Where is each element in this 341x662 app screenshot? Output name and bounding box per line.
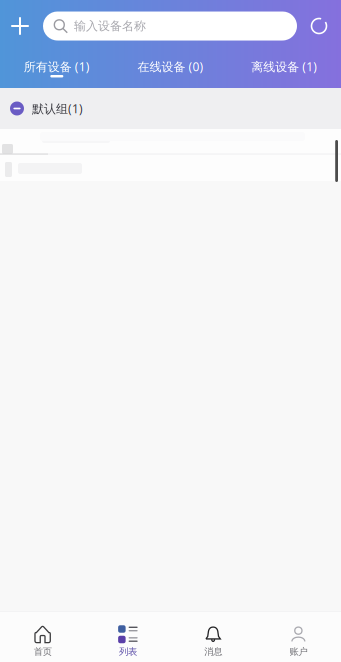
button[interactable]: 消息 xyxy=(170,612,256,662)
staticText: 列表 xyxy=(119,646,137,657)
button[interactable]: 所有设备 (1) xyxy=(0,53,114,77)
button[interactable]: 在线设备 (0) xyxy=(114,53,227,77)
button[interactable]: 输入设备名称 xyxy=(43,11,297,40)
staticText: 输入设备名称 xyxy=(74,19,146,33)
button[interactable]: 列表 xyxy=(85,612,170,662)
staticText: 默认组(1) xyxy=(32,100,83,116)
staticText: 账户 xyxy=(289,646,307,657)
button[interactable]: 默认组(1) xyxy=(0,88,341,129)
button[interactable]: 首页 xyxy=(0,612,85,662)
staticText: 首页 xyxy=(34,646,52,657)
staticText: 在线设备 (0) xyxy=(137,58,203,74)
button[interactable]: 账户 xyxy=(256,612,341,662)
staticText: 离线设备 (1) xyxy=(251,58,317,74)
button[interactable] xyxy=(0,129,341,181)
staticText: 所有设备 (1) xyxy=(24,58,90,74)
staticText: 消息 xyxy=(204,646,222,657)
button[interactable]: Refresh xyxy=(299,6,339,46)
button[interactable]: Add device xyxy=(0,6,40,46)
button[interactable]: 离线设备 (1) xyxy=(227,53,341,77)
